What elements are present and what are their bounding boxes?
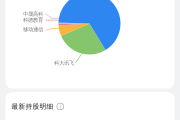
staticText: 科德教育	[23, 17, 43, 23]
staticText: i	[60, 103, 61, 110]
staticText: 最新持股明细	[12, 102, 54, 111]
staticText: 科大讯飞	[54, 60, 74, 66]
staticText: 移动通信	[23, 26, 43, 33]
staticText: 中晟高科	[23, 11, 43, 17]
button[interactable]: 最新持股明细	[12, 102, 64, 111]
